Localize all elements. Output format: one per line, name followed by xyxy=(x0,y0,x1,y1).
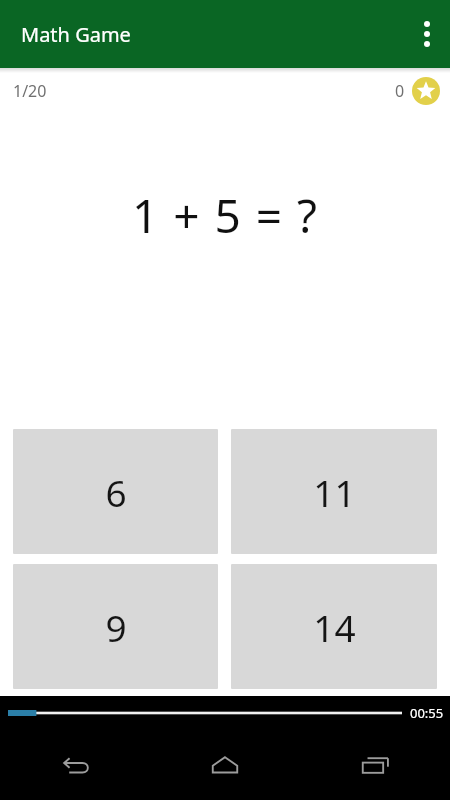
button[interactable]: Recents xyxy=(300,729,450,800)
button[interactable]: 14 xyxy=(231,564,437,689)
button[interactable]: 6 xyxy=(13,429,218,554)
button[interactable]: 9 xyxy=(13,564,218,689)
staticText: Math Game xyxy=(21,21,131,48)
staticText: 14 xyxy=(313,602,356,652)
staticText: 9 xyxy=(105,602,127,652)
button[interactable]: Home xyxy=(150,729,300,800)
staticText: 6 xyxy=(105,467,127,517)
button[interactable]: Back xyxy=(0,729,150,800)
staticText: 0 xyxy=(395,80,405,102)
staticText: 00:55 xyxy=(410,704,444,722)
button[interactable]: 11 xyxy=(231,429,437,554)
staticText: 11 xyxy=(313,467,356,517)
button[interactable]: More options xyxy=(404,0,450,68)
staticText: 1/20 xyxy=(13,80,47,102)
staticText: 1 + 5 = ? xyxy=(132,184,319,247)
